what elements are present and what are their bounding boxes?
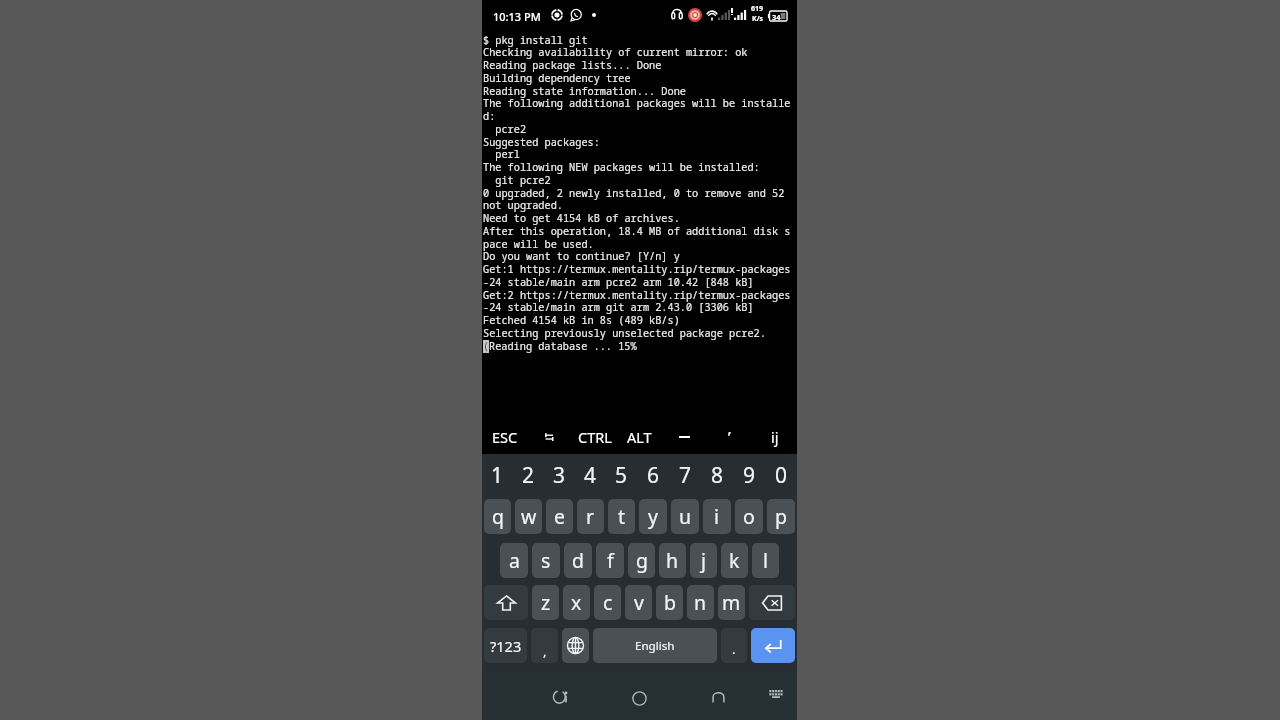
staticText: e [554,503,565,530]
staticText: l [763,547,769,574]
staticText: The following NEW packages will be insta… [483,160,760,174]
button[interactable]: o [735,499,763,534]
button[interactable]: f [596,543,624,578]
button[interactable]: 8 [701,454,733,496]
staticText: t [618,503,626,530]
staticText: 2 [522,461,535,490]
button[interactable]: ’ [707,420,752,454]
button[interactable]: y [639,499,667,534]
button[interactable]: a [500,543,528,578]
button[interactable]: . [721,628,747,663]
staticText: . [732,640,736,658]
button[interactable]: Back [551,688,569,706]
button[interactable]: r [577,499,604,534]
button[interactable]: w [515,499,542,534]
button[interactable]: ij [752,420,797,454]
staticText: CTRL [578,427,612,447]
button[interactable]: h [659,543,686,578]
button[interactable]: d [564,543,592,578]
staticText: k [729,547,740,574]
button[interactable] [662,420,707,454]
staticText: h [666,547,679,574]
staticText: Suggested packages: [483,135,600,149]
staticText: Selecting previously unselected package … [483,326,766,340]
button[interactable]: ESC [482,420,527,454]
button[interactable] [527,420,572,454]
staticText: Reading state information... Done [483,84,686,98]
button[interactable]: s [532,543,560,578]
staticText: 10:13 PM [493,9,541,24]
staticText: 3 [553,461,566,490]
button[interactable] [484,585,528,620]
button[interactable]: m [718,585,745,620]
button[interactable]: Home [629,688,649,708]
button[interactable]: 1 [482,454,513,496]
button[interactable]: Recent apps [708,687,728,707]
button[interactable] [751,628,795,663]
button[interactable]: Show keyboard [769,690,783,698]
staticText: Do you want to continue? [Y/n] y [483,249,680,263]
button[interactable]: 6 [637,454,669,496]
button[interactable]: 3 [544,454,575,496]
button[interactable]: l [752,543,779,578]
button[interactable]: 2 [513,454,544,496]
staticText: -24 stable/main arm pcre2 arm 10.42 [848… [483,275,754,289]
staticText: Get:2 https://termux.mentality.rip/termu… [483,288,791,302]
staticText: 619 [751,4,764,14]
button[interactable]: 5 [606,454,637,496]
staticText: ( [483,339,490,353]
button[interactable] [749,585,795,620]
button[interactable]: e [546,499,573,534]
button[interactable]: t [608,499,635,534]
button[interactable]: v [625,585,652,620]
button[interactable]: c [594,585,621,620]
staticText: English [635,638,675,654]
button[interactable] [562,628,589,663]
staticText: 4 [584,461,597,490]
staticText: K/s [752,14,764,24]
staticText: m [722,589,741,616]
button[interactable]: ALT [617,420,662,454]
staticText: 0 [775,461,788,490]
staticText: pace will be used. [483,237,594,251]
staticText: o [743,503,755,530]
button[interactable]: k [721,543,748,578]
staticText: x [571,589,582,616]
button[interactable]: ?123 [484,628,527,663]
button[interactable]: n [687,585,714,620]
staticText: Reading database ... 15% [489,339,637,353]
button[interactable]: i [703,499,731,534]
button[interactable]: 7 [669,454,701,496]
button[interactable]: English [593,628,717,663]
button[interactable]: u [671,499,699,534]
staticText: d: [483,109,496,123]
staticText: Checking availability of current mirror:… [483,45,748,59]
staticText: n [694,589,707,616]
staticText: 7 [679,461,692,490]
button[interactable]: q [484,499,511,534]
button[interactable]: 4 [575,454,606,496]
staticText: Need to get 4154 kB of archives. [483,211,680,225]
staticText: 9 [743,461,756,490]
button[interactable]: p [767,499,795,534]
staticText: c [603,589,613,616]
staticText: u [679,503,692,530]
button[interactable]: j [690,543,717,578]
button[interactable]: x [563,585,590,620]
staticText: ij [771,427,779,447]
button[interactable]: g [628,543,655,578]
button[interactable]: 0 [765,454,797,496]
staticText: ESC [492,427,518,447]
staticText: s [541,547,551,574]
button[interactable]: b [656,585,683,620]
staticText: Get:1 https://termux.mentality.rip/termu… [483,262,791,276]
staticText: not upgraded. [483,198,563,212]
button[interactable]: 9 [733,454,765,496]
staticText: b [664,589,676,616]
staticText: g [636,547,648,574]
button[interactable]: z [532,585,559,620]
staticText: 5 [615,461,628,490]
button[interactable]: , [531,628,558,663]
staticText: $ pkg install git [483,33,588,47]
button[interactable]: CTRL [572,420,617,454]
